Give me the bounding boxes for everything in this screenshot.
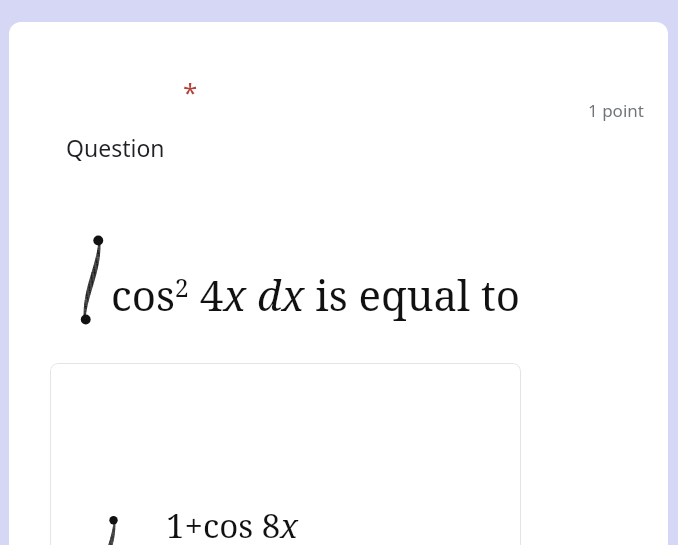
- staticText: Question: [66, 132, 165, 163]
- other: Required: [175, 74, 205, 104]
- staticText: cos2 4x dx is equal to: [111, 266, 521, 323]
- button[interactable]: 1+cos 8x: [50, 363, 521, 545]
- button[interactable]: Required: [9, 22, 668, 545]
- staticText: 1+cos 8x: [166, 503, 299, 545]
- staticText: *: [183, 74, 198, 104]
- staticText: 1 point: [588, 99, 644, 122]
